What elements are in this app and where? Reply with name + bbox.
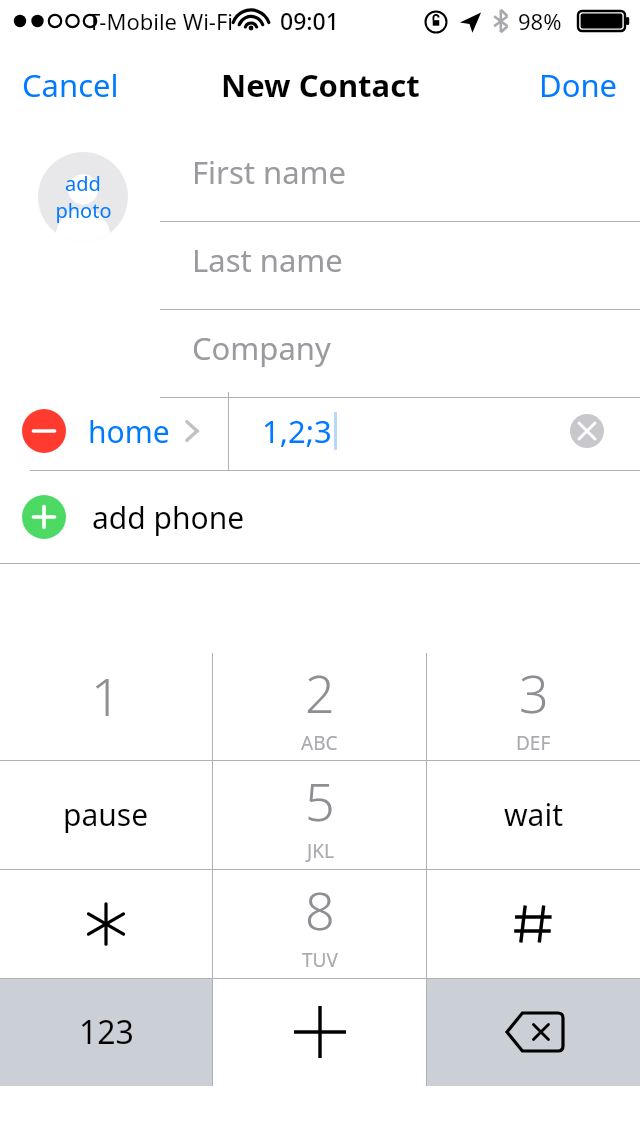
staticText: Last name: [192, 239, 343, 281]
staticText: 123: [79, 1010, 134, 1054]
staticText: wait: [504, 794, 563, 835]
staticText: New Contact: [221, 64, 420, 106]
staticText: pause: [63, 794, 149, 835]
staticText: 1: [91, 660, 121, 731]
staticText: add phone: [92, 497, 245, 538]
button[interactable]: Remove phone: [0, 392, 640, 470]
staticText: add: [65, 170, 101, 197]
button[interactable]: 1: [0, 653, 212, 760]
button[interactable]: wait: [427, 760, 640, 869]
button[interactable]: Done: [517, 50, 640, 120]
staticText: photo: [55, 197, 112, 224]
staticText: 98%: [518, 6, 562, 36]
staticText: 3: [519, 657, 549, 728]
staticText: JKL: [307, 838, 334, 864]
staticText: 09:01: [280, 5, 339, 36]
button[interactable]: Plus: [213, 978, 426, 1086]
button[interactable]: Pound: [427, 869, 640, 978]
button[interactable]: add phone: [0, 471, 640, 563]
button[interactable]: pause: [0, 760, 212, 869]
button[interactable]: Delete: [427, 978, 640, 1086]
button[interactable]: Add photo: [38, 152, 128, 242]
button[interactable]: First name: [160, 134, 640, 222]
button[interactable]: 8: [213, 869, 426, 978]
staticText: Company: [192, 327, 331, 369]
staticText: home: [88, 411, 170, 452]
staticText: 5: [305, 765, 335, 836]
button[interactable]: Clear text: [570, 414, 604, 448]
button[interactable]: 2: [213, 653, 426, 760]
staticText: 2: [305, 657, 335, 728]
button[interactable]: Cancel: [0, 50, 141, 120]
button[interactable]: 5: [213, 760, 426, 869]
staticText: T-Mobile Wi-Fi: [88, 6, 234, 36]
button[interactable]: 123: [0, 978, 212, 1086]
button[interactable]: Company: [160, 310, 640, 398]
staticText: Done: [539, 64, 618, 106]
staticText: First name: [192, 151, 347, 193]
staticText: 1,2;3: [262, 410, 332, 452]
staticText: DEF: [516, 730, 551, 756]
button[interactable]: Last name: [160, 222, 640, 310]
button[interactable]: Star: [0, 869, 212, 978]
staticText: 8: [305, 874, 335, 945]
button[interactable]: Remove phone: [22, 409, 66, 453]
staticText: TUV: [302, 947, 338, 973]
button[interactable]: 3: [427, 653, 640, 760]
staticText: Cancel: [22, 64, 119, 106]
staticText: ABC: [301, 730, 338, 756]
